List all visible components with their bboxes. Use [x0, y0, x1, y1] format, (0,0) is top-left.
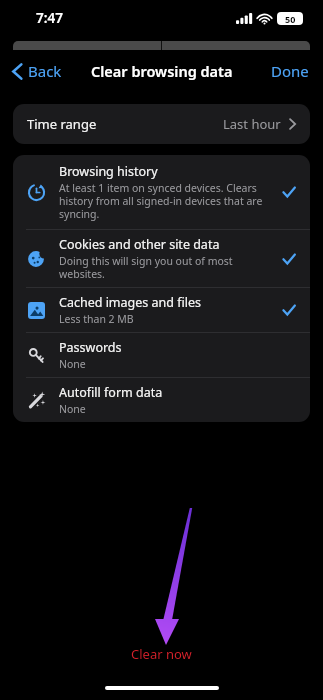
staticText: Autofill form data: [59, 384, 163, 401]
staticText: Browsing history: [59, 163, 158, 180]
button[interactable]: Passwords: [13, 333, 310, 377]
staticText: Cookies and other site data: [59, 236, 220, 253]
button[interactable]: Browsing history: [13, 155, 310, 229]
staticText: Cached images and files: [59, 294, 201, 311]
button[interactable]: Back: [8, 57, 66, 85]
staticText: Passwords: [59, 339, 122, 356]
button[interactable]: Cached images and files: [13, 288, 310, 332]
button[interactable]: Clear now: [0, 645, 323, 663]
button[interactable]: Done: [271, 57, 323, 85]
staticText: None: [59, 357, 86, 371]
button[interactable]: Cookies and other site data: [13, 230, 310, 287]
button[interactable]: Autofill form data: [13, 378, 310, 422]
staticText: At least 1 item on synced devices. Clear…: [59, 181, 272, 221]
staticText: Doing this will sign you out of most web…: [59, 254, 272, 281]
staticText: Back: [28, 61, 62, 81]
staticText: Time range: [27, 115, 97, 133]
staticText: Less than 2 MB: [59, 312, 134, 326]
staticText: 7:47: [36, 9, 63, 27]
button[interactable]: Time range: [13, 104, 310, 144]
staticText: Clear browsing data: [91, 61, 233, 81]
staticText: 50: [285, 13, 296, 25]
staticText: Last hour: [223, 115, 281, 133]
staticText: None: [59, 402, 86, 416]
